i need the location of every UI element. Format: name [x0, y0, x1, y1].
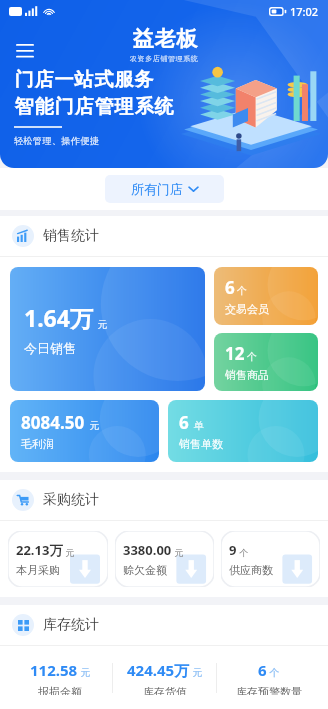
staticText: 库存预警数量	[236, 685, 302, 695]
staticText: 元	[190, 665, 203, 679]
button[interactable]: Menu	[10, 36, 40, 66]
button[interactable]: 6	[168, 400, 318, 462]
staticText: 益老板	[132, 26, 198, 52]
staticText: 个	[237, 546, 249, 558]
button[interactable]: 112.58	[8, 660, 112, 695]
staticText: 6	[225, 276, 235, 299]
staticText: 元	[172, 546, 184, 558]
button[interactable]: 3380.00	[115, 531, 214, 587]
staticText: 毛利润	[21, 437, 54, 451]
staticText: 17:02	[290, 4, 319, 19]
button[interactable]: 424.45万	[113, 660, 216, 695]
staticText: 8084.50	[21, 411, 85, 434]
button[interactable]: 销售统计	[0, 216, 328, 256]
staticText: 销售商品	[225, 368, 269, 382]
staticText: 12	[225, 342, 245, 365]
staticText: 赊欠金额	[123, 563, 167, 577]
button[interactable]: 9	[221, 531, 320, 587]
staticText: 元	[87, 418, 100, 432]
staticText: 1.64万	[24, 302, 93, 333]
staticText: 所有门店	[131, 181, 183, 197]
staticText: 销售统计	[43, 227, 99, 245]
staticText: 智能门店管理系统	[14, 95, 174, 119]
button[interactable]: 6	[214, 267, 318, 325]
staticText: 3380.00	[123, 541, 172, 559]
staticText: 112.58	[30, 660, 78, 680]
staticText: 6	[258, 660, 267, 680]
staticText: 6	[179, 411, 189, 434]
staticText: 采购统计	[43, 491, 99, 509]
button[interactable]: 12	[214, 333, 318, 391]
button[interactable]: 22.13万	[8, 531, 108, 587]
button[interactable]: 采购统计	[0, 480, 328, 520]
staticText: 今日销售	[24, 340, 76, 356]
staticText: 供应商数	[229, 563, 273, 577]
staticText: 本月采购	[16, 563, 60, 577]
staticText: 报损金额	[38, 685, 82, 695]
staticText: 9	[229, 541, 237, 559]
staticText: 个	[247, 350, 257, 363]
staticText: 销售单数	[179, 437, 223, 451]
staticText: 424.45万	[127, 660, 190, 680]
button[interactable]: 1.64万	[10, 267, 205, 391]
staticText: 个	[237, 284, 247, 297]
staticText: 22.13万	[16, 541, 63, 559]
staticText: 元	[63, 546, 75, 558]
staticText: 农资多店铺管理系统	[130, 54, 199, 63]
button[interactable]: 6	[217, 660, 320, 695]
staticText: 库存统计	[43, 616, 99, 634]
button[interactable]: 所有门店	[105, 175, 224, 203]
button[interactable]: 8084.50	[10, 400, 159, 462]
staticText: 个	[267, 665, 280, 679]
staticText: 轻松管理、操作便捷	[14, 135, 100, 146]
staticText: 元	[95, 317, 108, 331]
staticText: 元	[78, 665, 91, 679]
staticText: 交易会员	[225, 302, 269, 316]
staticText: 门店一站式服务	[14, 68, 154, 92]
button[interactable]: 库存统计	[0, 605, 328, 645]
staticText: 单	[191, 418, 204, 432]
staticText: 库存货值	[143, 685, 187, 695]
